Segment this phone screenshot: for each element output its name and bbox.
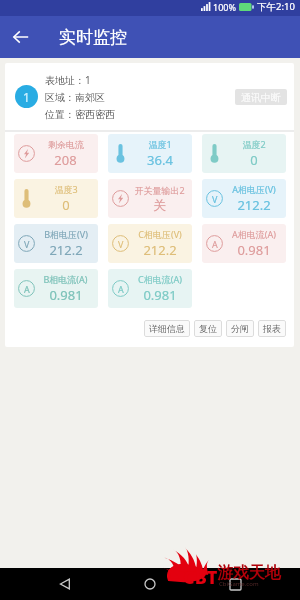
staticText: 详细信息 bbox=[149, 323, 185, 334]
button[interactable]: Recents bbox=[215, 568, 255, 600]
staticText: 表地址：1 bbox=[45, 73, 91, 87]
staticText: 区域：南郊区 bbox=[45, 91, 105, 104]
button[interactable]: 详细信息 bbox=[144, 320, 190, 337]
staticText: 位置：密西密西 bbox=[45, 108, 115, 121]
staticText: 通讯中断 bbox=[241, 91, 281, 104]
staticText: CbiGame.com bbox=[219, 580, 259, 588]
button[interactable]: 复位 bbox=[194, 320, 222, 337]
staticText: 1 bbox=[23, 89, 30, 105]
staticText: 0.981 bbox=[143, 286, 177, 304]
button[interactable]: 开关量输出2 bbox=[108, 179, 192, 218]
button[interactable]: 温度1 bbox=[108, 134, 192, 173]
button[interactable]: 通讯中断 bbox=[235, 89, 287, 105]
staticText: A bbox=[212, 238, 218, 250]
button[interactable]: 分闸 bbox=[226, 320, 254, 337]
staticText: V bbox=[212, 193, 218, 205]
staticText: 0 bbox=[250, 151, 258, 169]
button[interactable]: A bbox=[202, 224, 286, 263]
staticText: A相电压(V) bbox=[232, 183, 276, 195]
staticText: 游戏天地 bbox=[217, 563, 281, 583]
staticText: 36.4 bbox=[147, 151, 173, 169]
button[interactable]: V bbox=[108, 224, 192, 263]
staticText: A bbox=[24, 283, 30, 295]
button[interactable]: 温度3 bbox=[14, 179, 98, 218]
button[interactable]: 温度2 bbox=[202, 134, 286, 173]
staticText: 报表 bbox=[263, 323, 281, 334]
staticText: V bbox=[118, 238, 124, 250]
staticText: 复位 bbox=[199, 323, 217, 334]
button[interactable]: A bbox=[14, 269, 98, 308]
staticText: A bbox=[118, 283, 124, 295]
button[interactable]: Home bbox=[130, 568, 170, 600]
button[interactable]: Back bbox=[45, 568, 85, 600]
staticText: B相电流(A) bbox=[43, 273, 88, 285]
staticText: 开关量输出2 bbox=[134, 184, 185, 196]
staticText: C相电压(V) bbox=[138, 228, 182, 240]
staticText: A相电流(A) bbox=[232, 228, 276, 240]
staticText: 0.981 bbox=[237, 241, 271, 259]
staticText: 分闸 bbox=[231, 323, 249, 334]
staticText: 208 bbox=[54, 151, 77, 169]
staticText: 212.2 bbox=[237, 196, 271, 214]
button[interactable]: A bbox=[108, 269, 192, 308]
staticText: 关 bbox=[153, 197, 166, 213]
staticText: 实时监控 bbox=[59, 27, 127, 48]
button[interactable]: V bbox=[202, 179, 286, 218]
staticText: V bbox=[24, 238, 30, 250]
button[interactable]: V bbox=[14, 224, 98, 263]
staticText: 下午2:10 bbox=[257, 0, 295, 13]
staticText: 212.2 bbox=[49, 241, 83, 259]
staticText: 温度3 bbox=[54, 183, 78, 195]
staticText: B相电压(V) bbox=[44, 228, 88, 240]
staticText: 212.2 bbox=[143, 241, 177, 259]
staticText: C相电流(A) bbox=[138, 273, 182, 285]
staticText: CBT bbox=[183, 565, 218, 590]
staticText: 100% bbox=[213, 1, 236, 13]
button[interactable]: 报表 bbox=[258, 320, 286, 337]
staticText: 剩余电流 bbox=[48, 139, 84, 150]
button[interactable]: 剩余电流 bbox=[14, 134, 98, 173]
staticText: 温度1 bbox=[148, 138, 172, 150]
staticText: 0 bbox=[62, 196, 70, 214]
staticText: 0.981 bbox=[49, 286, 83, 304]
button[interactable]: Back bbox=[0, 16, 42, 58]
staticText: 温度2 bbox=[242, 138, 266, 150]
